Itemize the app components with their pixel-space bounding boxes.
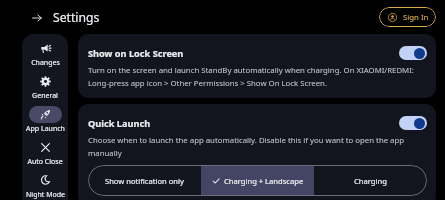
button[interactable]: Changes bbox=[22, 40, 68, 73]
staticText: Choose when to launch the app automatica… bbox=[88, 135, 427, 158]
staticText: Charging bbox=[354, 176, 387, 186]
staticText: Sign In bbox=[403, 12, 429, 23]
staticText: Changes bbox=[31, 58, 60, 68]
button[interactable]: Charging + Landscape bbox=[201, 165, 314, 196]
staticText: Show on Lock Screen bbox=[88, 47, 399, 60]
staticText: Turn on the screen and launch StandBy au… bbox=[88, 65, 427, 88]
button[interactable]: Charging bbox=[314, 165, 427, 196]
button[interactable]: Show notification only bbox=[88, 165, 201, 196]
staticText: Night Mode bbox=[26, 190, 65, 200]
button[interactable]: Night Mode bbox=[22, 172, 68, 200]
staticText: Settings bbox=[53, 9, 100, 26]
staticText: Auto Close bbox=[27, 157, 63, 167]
button[interactable]: General bbox=[22, 73, 68, 106]
button[interactable]: App Launch bbox=[22, 106, 68, 139]
button[interactable]: Toggle bbox=[399, 116, 427, 130]
staticText: General bbox=[32, 91, 58, 101]
staticText: App Launch bbox=[26, 124, 65, 134]
staticText: Show notification only bbox=[105, 176, 184, 186]
staticText: Quick Launch bbox=[88, 117, 399, 130]
staticText: Charging + Landscape bbox=[224, 176, 304, 186]
button[interactable]: Auto Close bbox=[22, 139, 68, 172]
button[interactable]: Toggle bbox=[399, 46, 427, 60]
button[interactable]: Back bbox=[29, 10, 45, 26]
button[interactable]: Sign In bbox=[379, 7, 436, 27]
